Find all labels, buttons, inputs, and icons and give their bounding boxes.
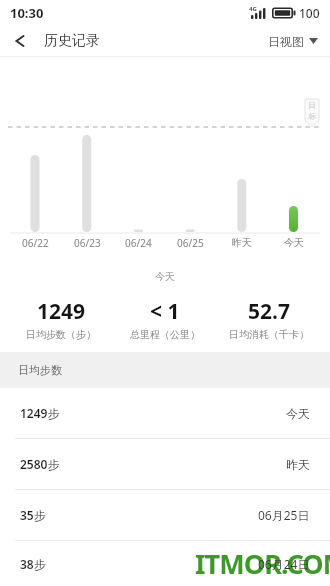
staticText: 2580步: [20, 456, 60, 472]
staticText: 今天: [286, 406, 310, 421]
staticText: 昨天: [232, 236, 252, 249]
staticText: 38步: [20, 556, 46, 572]
staticText: 100: [299, 5, 320, 21]
staticText: 日视图: [268, 34, 304, 49]
staticText: 06/24: [125, 236, 152, 250]
staticText: 今天: [284, 236, 304, 249]
button[interactable]: 35步: [0, 490, 330, 540]
button[interactable]: [0, 26, 40, 56]
staticText: 目: [308, 100, 316, 110]
staticText: 今天: [155, 270, 175, 283]
staticText: < 1: [150, 297, 180, 326]
staticText: 1249: [37, 297, 86, 326]
staticText: 06/23: [74, 236, 101, 250]
staticText: 06/25: [177, 236, 204, 250]
staticText: 1249步: [20, 405, 60, 421]
staticText: 10:30: [10, 4, 44, 22]
staticText: 06月24日: [258, 556, 310, 572]
button[interactable]: 2580步: [0, 439, 330, 489]
staticText: 历史记录: [44, 32, 100, 50]
staticText: 总里程（公里）: [130, 328, 200, 341]
staticText: 日均步数: [18, 363, 62, 377]
staticText: 06月25日: [258, 507, 310, 523]
staticText: ITMOR.COM: [195, 545, 330, 582]
staticText: 4G: [249, 5, 257, 13]
button[interactable]: 38步: [0, 541, 330, 586]
staticText: 日均步数（步）: [26, 328, 96, 341]
staticText: 标: [308, 111, 316, 121]
button[interactable]: 日视图: [256, 26, 330, 56]
staticText: 昨天: [286, 457, 310, 472]
staticText: 35步: [20, 507, 46, 523]
staticText: 06/22: [22, 236, 49, 250]
staticText: 日均消耗（千卡）: [229, 328, 309, 341]
button[interactable]: 1249步: [0, 388, 330, 438]
staticText: 52.7: [248, 297, 290, 326]
